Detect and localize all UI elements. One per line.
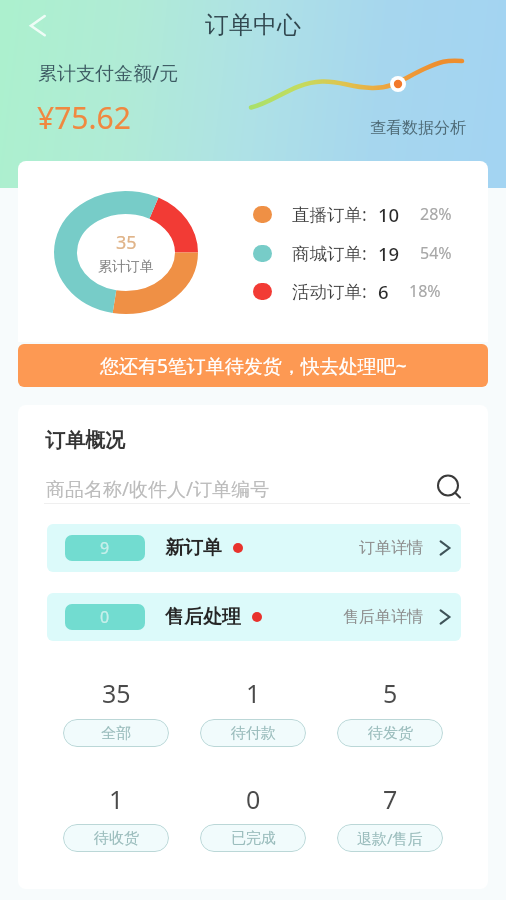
staticText: 1 [246, 676, 261, 710]
staticText: 54% [420, 242, 452, 264]
button[interactable]: Back [20, 4, 62, 46]
staticText: 累计订单 [98, 258, 154, 276]
staticText: 9 [100, 537, 110, 559]
staticText: 订单详情 [359, 538, 423, 558]
staticText: 待收货 [94, 829, 139, 848]
staticText: 您还有5笔订单待发货，快去处理吧~ [100, 353, 407, 379]
staticText: 全部 [101, 724, 131, 743]
staticText: 35 [102, 676, 131, 710]
button[interactable]: 35 [55, 676, 177, 759]
staticText: 直播订单: [292, 202, 367, 226]
button[interactable]: 查看数据分析 [370, 118, 466, 138]
staticText: 售后单详情 [343, 607, 423, 627]
staticText: 订单概况 [45, 428, 125, 453]
button[interactable]: 0 [47, 593, 461, 641]
button[interactable]: 9 [47, 524, 461, 572]
staticText: 待付款 [231, 724, 276, 743]
staticText: 订单中心 [205, 10, 301, 40]
staticText: 7 [383, 782, 398, 816]
staticText: 35 [116, 230, 137, 255]
staticText: 待发货 [368, 724, 413, 743]
staticText: 0 [100, 606, 110, 628]
staticText: 新订单 [165, 536, 222, 560]
button[interactable]: 1 [55, 782, 177, 865]
staticText: 商品名称/收件人/订单编号 [46, 476, 270, 502]
staticText: 19 [378, 241, 400, 266]
button[interactable]: 0 [192, 782, 314, 865]
staticText: 1 [109, 782, 124, 816]
staticText: 售后处理 [165, 605, 241, 629]
staticText: ¥75.62 [37, 97, 131, 138]
staticText: 退款/售后 [357, 828, 423, 848]
button[interactable]: 5 [329, 676, 451, 759]
button[interactable]: Search [432, 469, 470, 507]
staticText: 6 [378, 279, 389, 304]
staticText: 5 [383, 676, 398, 710]
staticText: 28% [420, 203, 452, 225]
staticText: 10 [378, 202, 400, 227]
staticText: 18% [409, 280, 441, 302]
staticText: 活动订单: [292, 279, 367, 303]
staticText: 已完成 [231, 829, 276, 848]
staticText: 0 [246, 782, 261, 816]
button[interactable]: 7 [329, 782, 451, 865]
button[interactable]: 1 [192, 676, 314, 759]
staticText: 商城订单: [292, 241, 367, 265]
staticText: 累计支付金额/元 [38, 60, 179, 86]
button[interactable]: 您还有5笔订单待发货，快去处理吧~ [18, 344, 488, 387]
